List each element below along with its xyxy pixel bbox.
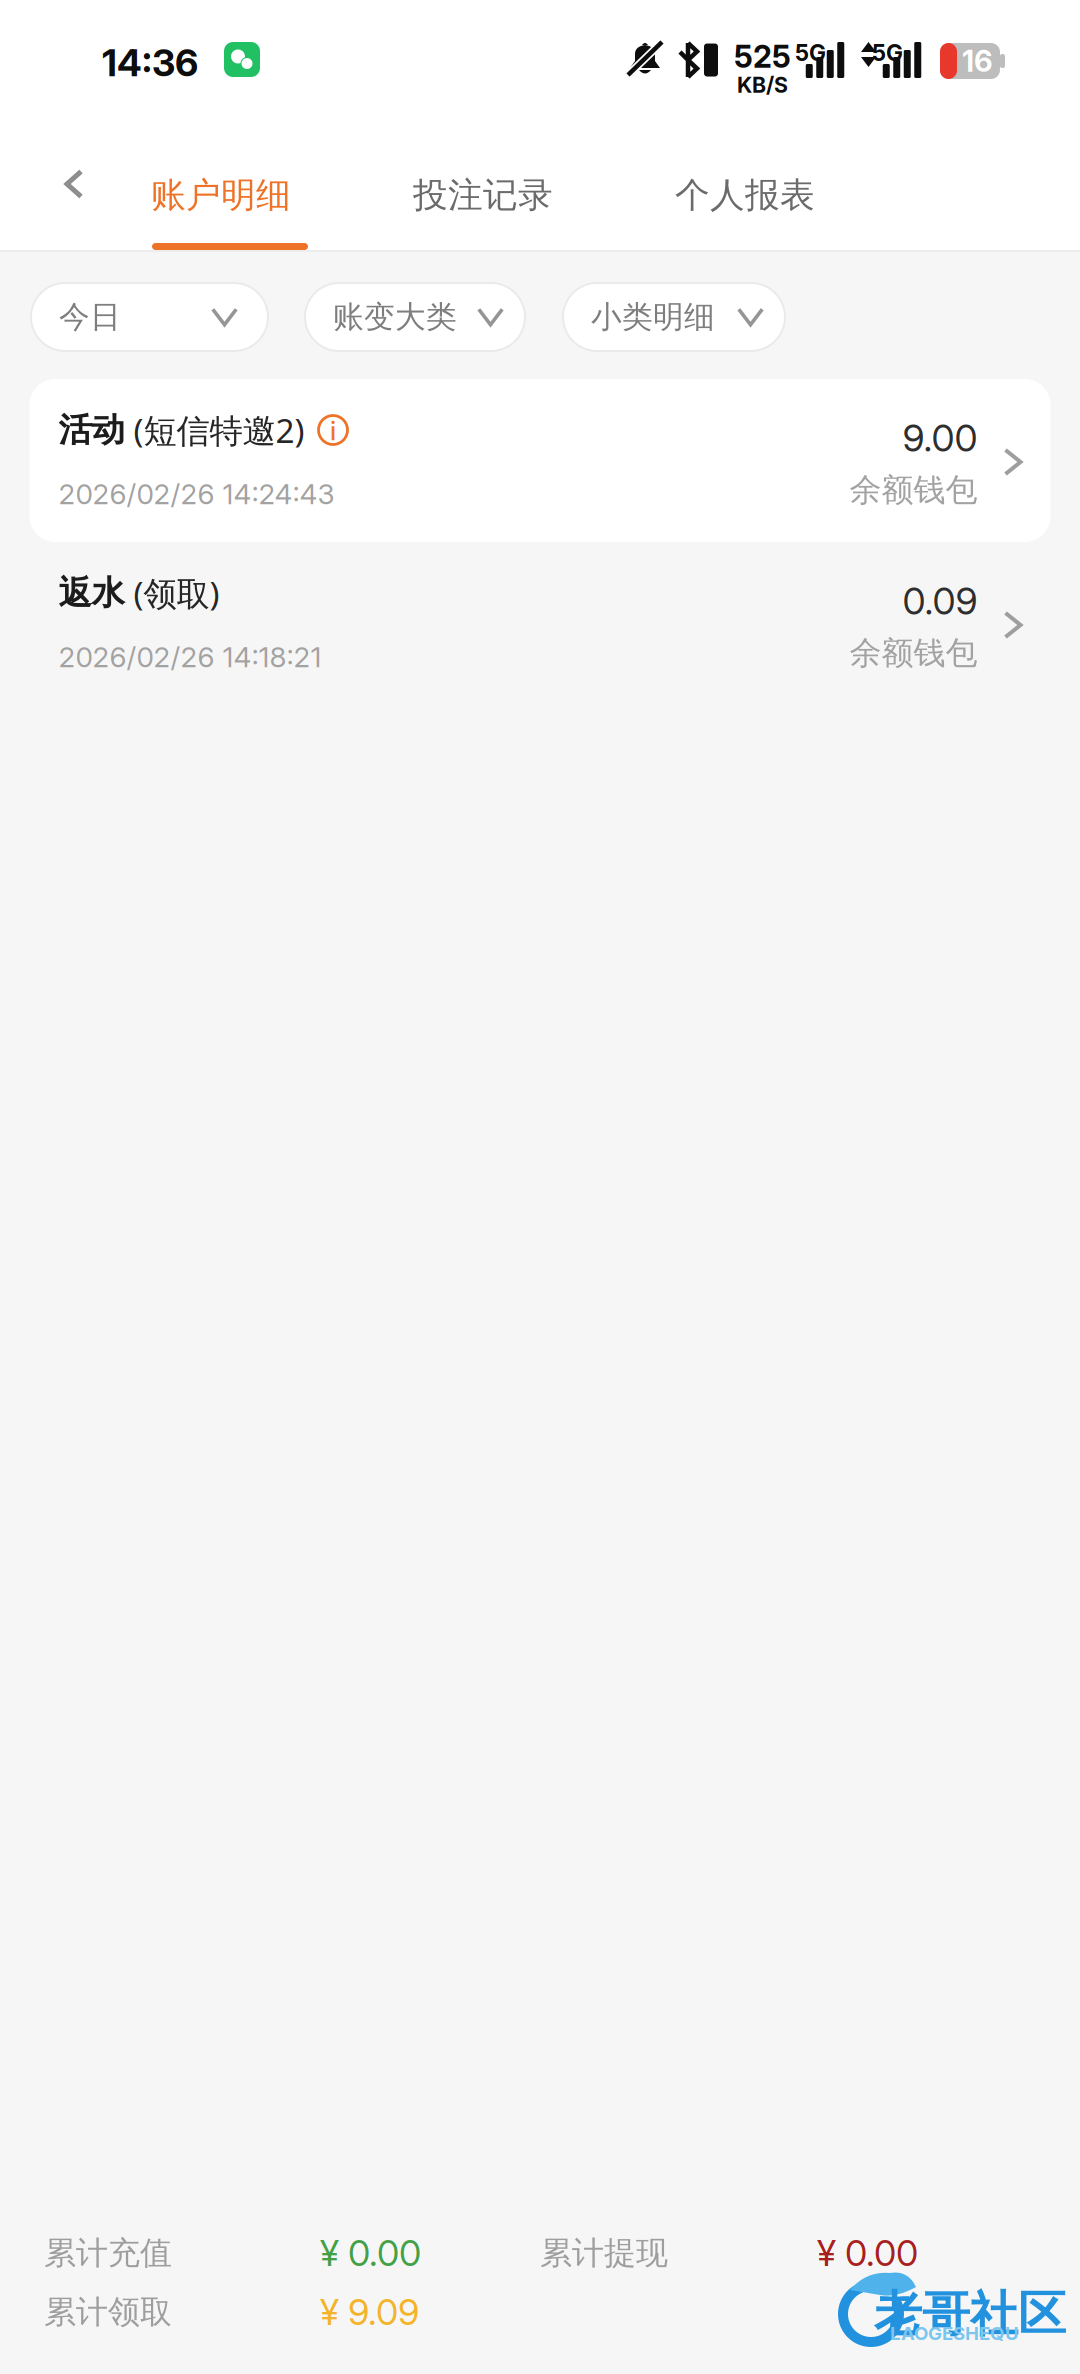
staticText: 2026/02/26 14:18:21 <box>58 640 321 674</box>
staticText: (短信特邀2) <box>124 407 304 453</box>
staticText: 今日 <box>59 298 121 336</box>
staticText: ¥ 9.09 <box>320 2290 419 2334</box>
staticText: ¥ 0.00 <box>320 2231 421 2275</box>
button[interactable]: 今日 <box>31 283 268 351</box>
button[interactable]: 小类明细 <box>563 283 785 351</box>
staticText: 5G <box>795 39 826 66</box>
staticText: 账户明细 <box>151 173 291 217</box>
staticText: 个人报表 <box>675 173 815 217</box>
staticText: 余额钱包 <box>849 470 977 510</box>
staticText: 14:36 <box>102 40 198 85</box>
staticText: 小类明细 <box>591 298 715 336</box>
staticText: ¥ 0.00 <box>817 2231 918 2275</box>
button[interactable]: Back <box>0 120 90 250</box>
staticText: 累计充值 <box>44 2233 172 2273</box>
staticText: 账变大类 <box>333 298 457 336</box>
button[interactable]: 账户明细 <box>90 120 352 250</box>
staticText: 投注记录 <box>413 173 553 217</box>
staticText: 老哥社区 <box>874 2284 1066 2344</box>
staticText: 525 <box>734 38 791 75</box>
staticText: 2026/02/26 14:24:43 <box>58 477 334 511</box>
staticText: 余额钱包 <box>849 633 977 673</box>
staticText: LAOGESHEQU <box>890 2322 1019 2345</box>
button[interactable]: 账变大类 <box>305 283 525 351</box>
staticText: 9.00 <box>902 415 977 461</box>
staticText: KB/S <box>737 72 788 98</box>
staticText: 累计提现 <box>540 2233 668 2273</box>
staticText: 返水 <box>58 572 124 614</box>
staticText: (领取) <box>124 570 219 616</box>
staticText: 活动 <box>58 409 124 451</box>
staticText: 0.09 <box>902 578 977 624</box>
button[interactable]: 返水 <box>29 542 1050 705</box>
button[interactable]: 活动 <box>29 379 1050 542</box>
staticText: 5G <box>872 39 903 66</box>
staticText: 累计领取 <box>44 2292 172 2332</box>
button[interactable]: 投注记录 <box>352 120 614 250</box>
staticText: i <box>330 416 336 446</box>
staticText: 16 <box>962 43 993 79</box>
button[interactable]: 个人报表 <box>614 120 876 250</box>
